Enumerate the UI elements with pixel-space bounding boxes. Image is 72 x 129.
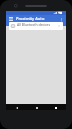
button[interactable]: Open navigation menu	[8, 16, 14, 22]
staticText: All Bluetooth devices	[17, 22, 51, 27]
button[interactable]: All Bluetooth devices	[9, 22, 63, 30]
button[interactable]: Home	[34, 105, 39, 110]
button[interactable]: More options	[58, 16, 64, 22]
button[interactable]: Recent apps	[53, 105, 58, 110]
staticText: Proximity Auto	[16, 16, 58, 21]
button[interactable]: Back	[14, 105, 19, 110]
button[interactable]: Expand device list	[57, 24, 61, 28]
